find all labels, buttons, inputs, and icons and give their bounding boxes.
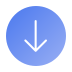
button[interactable]: Download — [6, 6, 66, 66]
